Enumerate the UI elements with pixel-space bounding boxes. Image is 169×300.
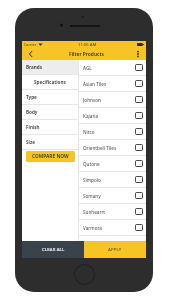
staticText: Asian Tiles bbox=[83, 81, 107, 87]
staticText: Johnson bbox=[83, 97, 101, 103]
staticText: Varmora bbox=[83, 225, 102, 231]
staticText: APPLY bbox=[108, 247, 122, 253]
button[interactable]: APPLY bbox=[84, 241, 146, 258]
button[interactable]: Sunhearrt bbox=[79, 204, 146, 219]
staticText: Finish bbox=[26, 124, 40, 130]
button[interactable]: Johnson bbox=[79, 92, 146, 107]
button[interactable]: Finish bbox=[22, 120, 78, 134]
button[interactable]: Size bbox=[22, 135, 78, 149]
staticText: Body bbox=[26, 109, 38, 115]
button[interactable]: Type bbox=[22, 90, 78, 104]
button[interactable]: Qutone bbox=[79, 156, 146, 171]
staticText: Nitco bbox=[83, 129, 95, 135]
button[interactable]: Back bbox=[22, 48, 38, 60]
button[interactable]: Kajaria bbox=[79, 108, 146, 123]
staticText: AGL bbox=[83, 65, 92, 71]
button[interactable]: CLEAR ALL bbox=[22, 241, 84, 258]
staticText: Filter Products bbox=[69, 51, 104, 58]
button[interactable]: Body bbox=[22, 105, 78, 119]
staticText: Brands bbox=[26, 64, 42, 70]
button[interactable]: Nitco bbox=[79, 124, 146, 139]
staticText: Orientbell Tiles bbox=[83, 145, 117, 151]
button[interactable]: Somany bbox=[79, 188, 146, 203]
button[interactable]: COMPARE NOW bbox=[26, 151, 75, 162]
button[interactable]: Orientbell Tiles bbox=[79, 140, 146, 155]
staticText: COMPARE NOW bbox=[32, 153, 69, 160]
staticText: 11:05 AM bbox=[78, 42, 97, 48]
button[interactable]: Specifications bbox=[22, 75, 78, 89]
button[interactable]: AGL bbox=[79, 60, 146, 75]
staticText: CLEAR ALL bbox=[42, 247, 65, 253]
staticText: Kajaria bbox=[83, 113, 99, 119]
button[interactable]: Home bbox=[74, 264, 95, 285]
staticText: Simpolo bbox=[83, 177, 101, 183]
staticText: Somany bbox=[83, 193, 101, 199]
button[interactable]: Brands bbox=[22, 60, 78, 74]
staticText: Carrier bbox=[24, 42, 37, 47]
button[interactable]: More options bbox=[132, 48, 146, 60]
staticText: Qutone bbox=[83, 161, 100, 167]
staticText: Sunhearrt bbox=[83, 209, 106, 215]
staticText: Type bbox=[26, 94, 37, 100]
button[interactable]: Simpolo bbox=[79, 172, 146, 187]
staticText: Specifications bbox=[34, 79, 66, 85]
button[interactable]: Asian Tiles bbox=[79, 76, 146, 91]
staticText: Size bbox=[26, 139, 35, 145]
button[interactable]: Varmora bbox=[79, 220, 146, 235]
